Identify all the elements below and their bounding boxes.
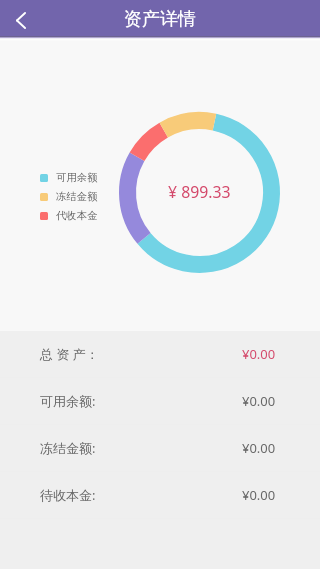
staticText: 可用余额: bbox=[40, 392, 96, 410]
staticText: ¥0.00 bbox=[242, 392, 276, 410]
button[interactable]: 冻结金额: bbox=[0, 425, 320, 471]
button[interactable]: 可用余额: bbox=[0, 378, 320, 424]
staticText: 资产详情 bbox=[124, 8, 196, 31]
staticText: 待收本金: bbox=[40, 486, 96, 504]
staticText: 代收本金 bbox=[56, 209, 98, 222]
staticText: ¥0.00 bbox=[242, 439, 276, 457]
staticText: 可用余额 bbox=[56, 171, 98, 184]
staticText: 冻结金额: bbox=[40, 439, 96, 457]
staticText: 总 资 产： bbox=[40, 345, 99, 363]
button[interactable]: 总 资 产： bbox=[0, 331, 320, 377]
button[interactable]: 代收本金 bbox=[40, 206, 98, 225]
button[interactable]: 可用余额 bbox=[40, 168, 98, 187]
button[interactable]: 待收本金: bbox=[0, 472, 320, 518]
staticText: ¥ 899.33 bbox=[168, 181, 231, 203]
staticText: 冻结金额 bbox=[56, 190, 98, 203]
button[interactable]: Back bbox=[0, 0, 42, 36]
button[interactable]: 冻结金额 bbox=[40, 187, 98, 206]
staticText: ¥0.00 bbox=[242, 486, 276, 504]
staticText: ¥0.00 bbox=[242, 345, 276, 363]
